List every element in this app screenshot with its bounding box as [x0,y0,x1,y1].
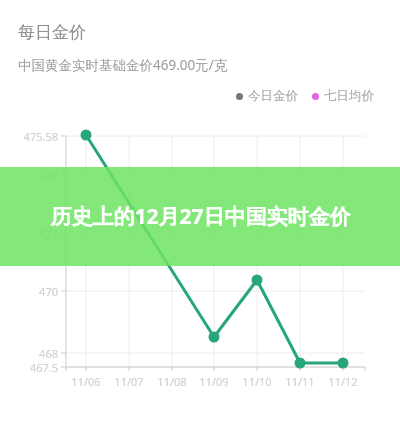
staticText: 历史上的12月27日中国实时金价 [50,202,351,231]
staticText: 475.58 [4,129,58,144]
staticText: 467.5 [4,360,58,375]
staticText: 11/06 [64,374,108,389]
staticText: 今日金价 [248,88,298,104]
staticText: 11/09 [192,374,236,389]
staticText: 中国黄金实时基础金价469.00元/克 [18,56,228,74]
staticText: 470 [4,284,58,299]
staticText: 11/07 [107,374,151,389]
button[interactable]: 七日均价 [312,86,374,106]
staticText: 每日金价 [18,22,86,43]
staticText: 11/12 [321,374,365,389]
staticText: 11/11 [278,374,322,389]
staticText: 11/08 [150,374,194,389]
staticText: 468 [4,346,58,361]
button[interactable]: 今日金价 [236,86,298,106]
staticText: 11/10 [235,374,279,389]
staticText: 七日均价 [324,88,374,104]
